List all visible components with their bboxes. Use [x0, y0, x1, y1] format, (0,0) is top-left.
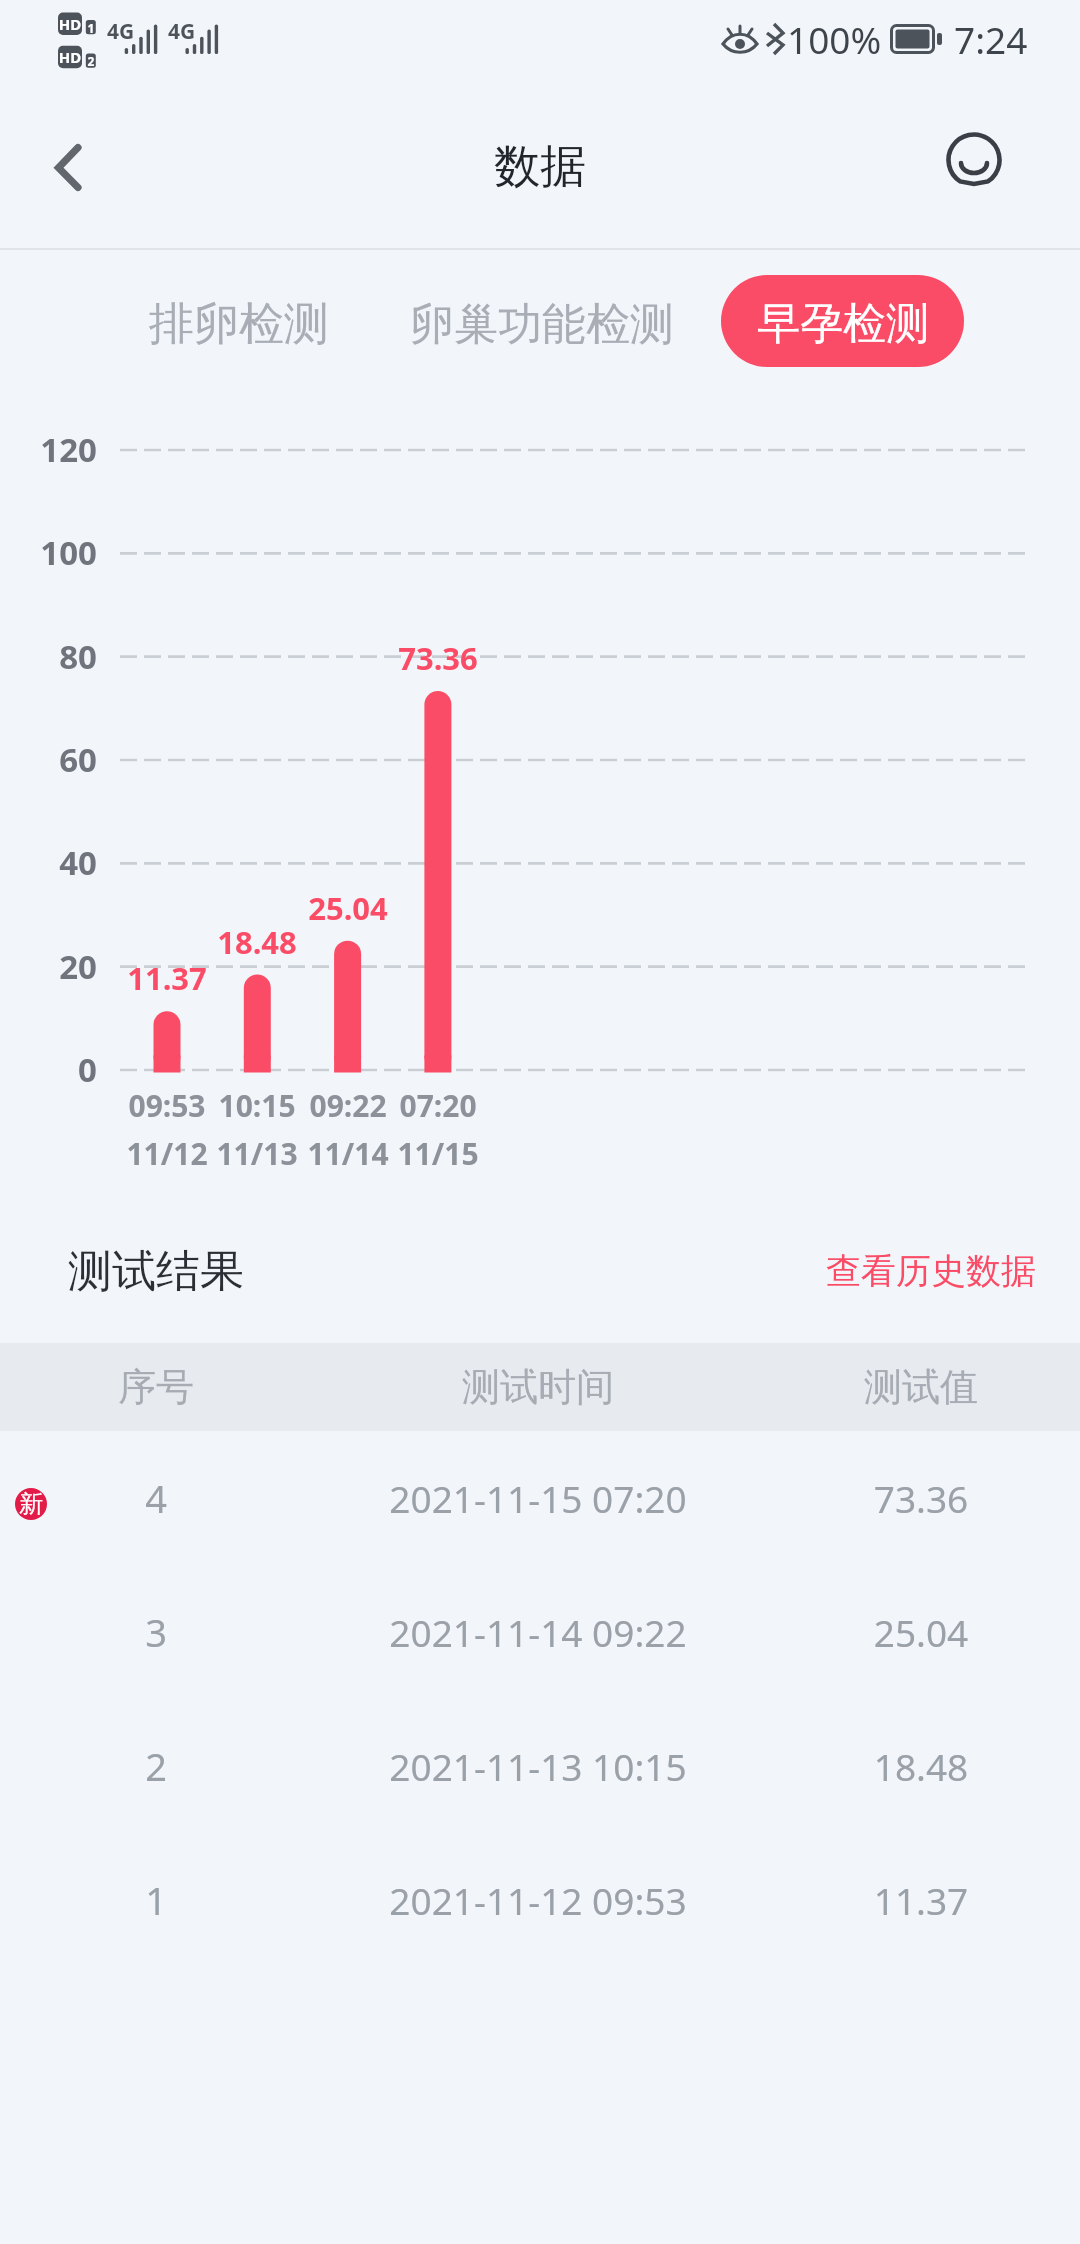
staticText: 09:22 [288, 1085, 408, 1126]
staticText: 4G [168, 17, 196, 46]
staticText: 80 [0, 634, 97, 679]
staticText: 07:20 [378, 1085, 498, 1126]
staticText: 2021-11-13 10:15 [338, 1741, 738, 1791]
staticText: 11/15 [378, 1133, 498, 1174]
staticText: 18.48 [182, 921, 332, 963]
staticText: 测试结果 [68, 1244, 244, 1299]
staticText: 卵巢功能检测 [410, 297, 674, 352]
staticText: 查看历史数据 [826, 1249, 1036, 1293]
staticText: 40 [0, 840, 97, 885]
staticText: 09:53 [107, 1085, 227, 1126]
staticText: 100% [787, 14, 882, 64]
staticText: 11/13 [197, 1133, 317, 1174]
staticText: 11.37 [92, 957, 242, 999]
button[interactable]: 卵巢功能检测 [372, 275, 712, 374]
staticText: 早孕检测 [757, 297, 929, 351]
staticText: 11.37 [721, 1875, 1080, 1925]
staticText: 新 [19, 1489, 43, 1519]
button[interactable]: Back [18, 123, 114, 219]
staticText: 20 [0, 944, 97, 989]
staticText: 2021-11-14 09:22 [338, 1607, 738, 1657]
staticText: 0 [0, 1047, 97, 1092]
staticText: 测试时间 [338, 1363, 738, 1411]
staticText: 测试值 [721, 1363, 1080, 1411]
button[interactable]: 排卵检测 [111, 274, 367, 375]
staticText: 3 [0, 1606, 356, 1658]
staticText: 2021-11-15 07:20 [338, 1473, 738, 1523]
staticText: 2 [0, 1740, 356, 1792]
staticText: 100 [0, 530, 97, 575]
staticText: 排卵检测 [149, 296, 329, 353]
staticText: 25.04 [721, 1607, 1080, 1657]
staticText: 25.04 [273, 887, 423, 929]
staticText: 10:15 [197, 1085, 317, 1126]
button[interactable]: 早孕检测 [721, 275, 964, 367]
button[interactable]: 新 [0, 1431, 1080, 1565]
staticText: 2021-11-12 09:53 [338, 1875, 738, 1925]
staticText: 序号 [0, 1363, 356, 1411]
staticText: 2 [85, 53, 97, 69]
staticText: 1 [0, 1874, 356, 1926]
staticText: 120 [0, 427, 97, 472]
button[interactable]: Feedback [934, 120, 1014, 200]
staticText: 18.48 [721, 1741, 1080, 1791]
button[interactable]: 2 [0, 1699, 1080, 1833]
button[interactable]: 1 [0, 1833, 1080, 1967]
staticText: HD [58, 14, 82, 34]
staticText: 73.36 [721, 1473, 1080, 1523]
staticText: 数据 [494, 138, 586, 196]
staticText: 1 [85, 20, 97, 36]
button[interactable]: 3 [0, 1565, 1080, 1699]
staticText: HD [58, 47, 82, 67]
staticText: 7:24 [954, 14, 1028, 64]
staticText: 73.36 [363, 637, 513, 679]
staticText: 60 [0, 737, 97, 782]
staticText: 11/12 [107, 1133, 227, 1174]
button[interactable]: 查看历史数据 [806, 1235, 1080, 1307]
staticText: 4G [107, 17, 135, 46]
staticText: 11/14 [288, 1133, 408, 1174]
staticText: 4 [0, 1472, 356, 1524]
